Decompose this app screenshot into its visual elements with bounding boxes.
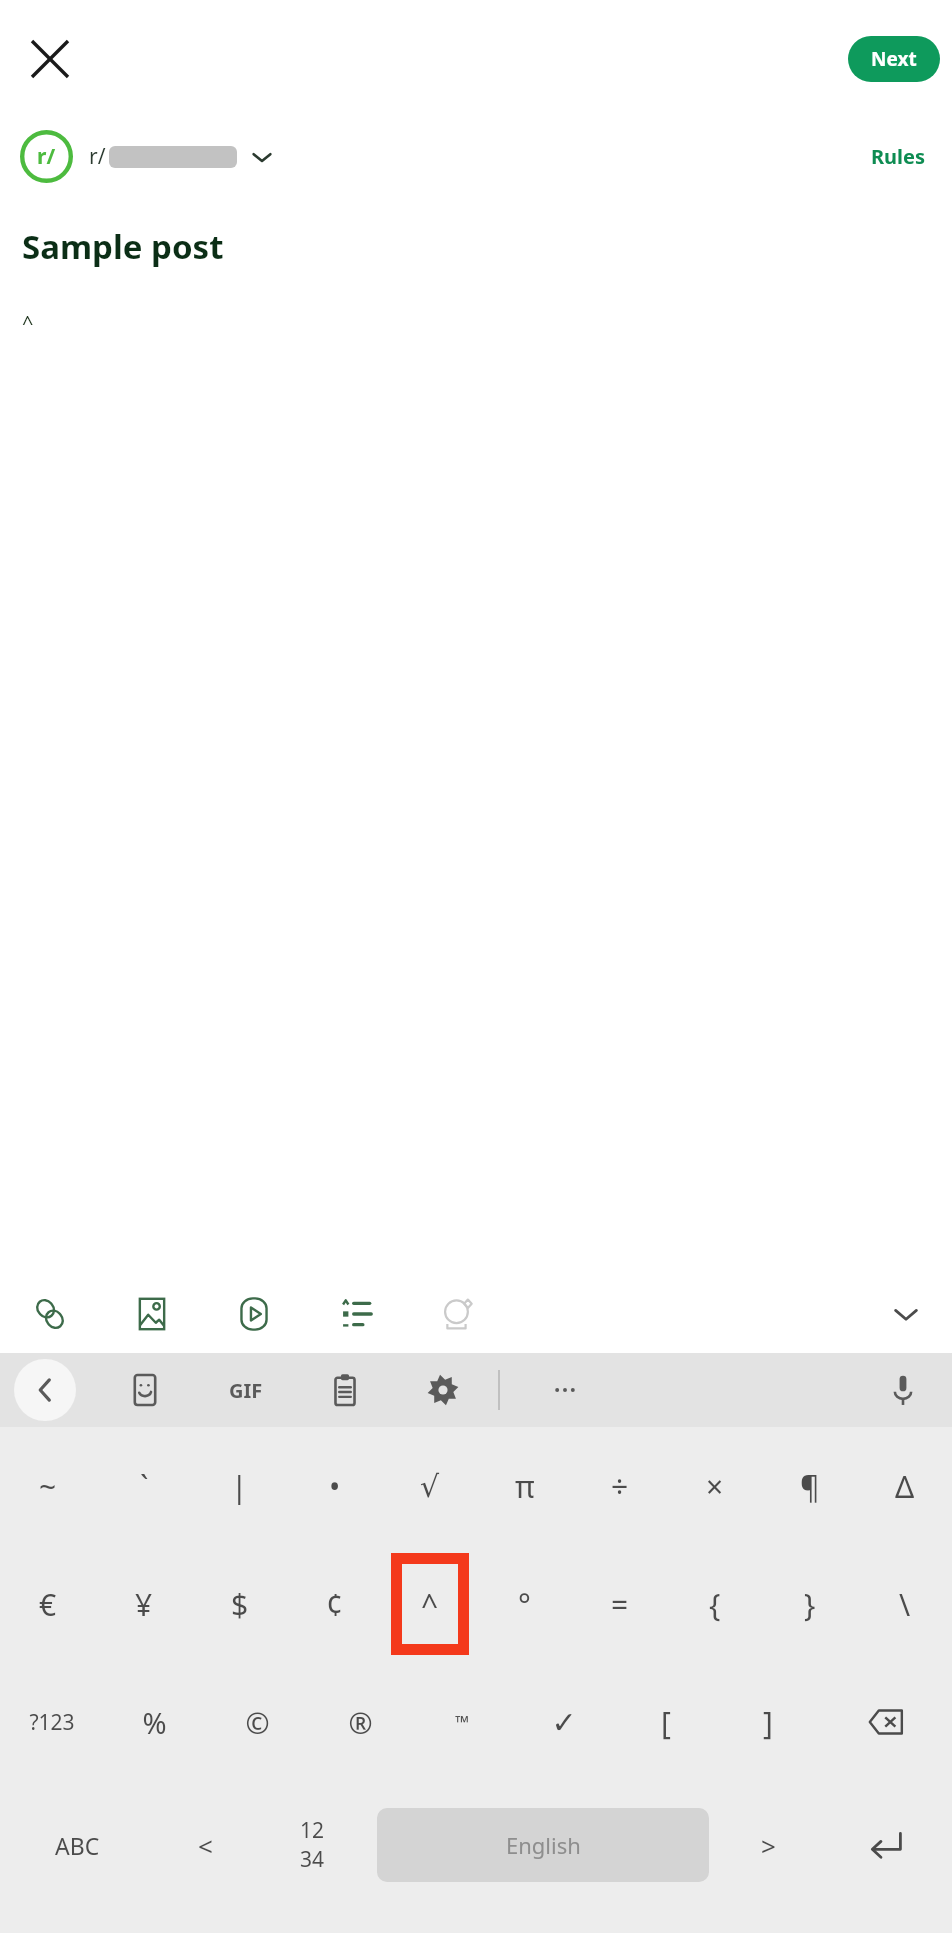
button[interactable]: Voice input xyxy=(876,1363,930,1417)
button[interactable]: ™ xyxy=(411,1663,513,1781)
staticText: ^ xyxy=(421,1584,439,1625)
staticText: $ xyxy=(231,1584,249,1625)
staticText: ® xyxy=(348,1703,373,1742)
button[interactable]: < xyxy=(154,1781,256,1909)
button[interactable]: Insert link xyxy=(24,1288,76,1340)
button[interactable]: > xyxy=(717,1781,819,1909)
button[interactable]: Community avatar xyxy=(20,130,73,183)
button[interactable]: { xyxy=(667,1545,762,1663)
button[interactable]: Clipboard xyxy=(318,1363,372,1417)
button[interactable]: Close xyxy=(12,21,88,97)
button[interactable]: ÷ xyxy=(572,1427,667,1545)
button[interactable]: More options xyxy=(538,1363,592,1417)
button[interactable]: English xyxy=(377,1808,709,1882)
button[interactable]: GIF xyxy=(216,1360,276,1420)
button[interactable]: π xyxy=(477,1427,572,1545)
button[interactable]: ¶ xyxy=(762,1427,857,1545)
button[interactable]: Sample post xyxy=(22,224,952,269)
staticText: Rules xyxy=(871,143,926,170)
button[interactable]: € xyxy=(0,1545,96,1663)
staticText: | xyxy=(231,1466,248,1507)
staticText: π xyxy=(515,1466,535,1507)
staticText: < xyxy=(198,1828,213,1863)
staticText: 12 xyxy=(300,1816,325,1845)
staticText: > xyxy=(761,1828,776,1863)
button[interactable]: Next xyxy=(848,36,940,82)
button[interactable]: ] xyxy=(717,1663,819,1781)
button[interactable]: Insert image xyxy=(126,1288,178,1340)
staticText: ¶ xyxy=(800,1466,820,1507)
staticText: } xyxy=(804,1584,816,1625)
staticText: { xyxy=(709,1584,721,1625)
button[interactable]: Rules xyxy=(865,137,932,176)
staticText: Δ xyxy=(895,1466,915,1507)
staticText: ?123 xyxy=(29,1708,75,1737)
staticText: % xyxy=(142,1703,167,1742)
staticText: ÷ xyxy=(611,1466,629,1507)
button[interactable]: ® xyxy=(309,1663,411,1781)
button[interactable]: Backspace xyxy=(819,1663,952,1781)
staticText: ✓ xyxy=(551,1705,577,1740)
button[interactable]: ¥ xyxy=(96,1545,192,1663)
button[interactable]: r/ xyxy=(89,142,273,171)
button[interactable]: ¢ xyxy=(287,1545,382,1663)
button[interactable]: Collapse toolbar xyxy=(882,1290,930,1338)
staticText: English xyxy=(506,1830,581,1860)
staticText: = xyxy=(611,1584,629,1625)
staticText: ¥ xyxy=(135,1584,153,1625)
staticText: ^ xyxy=(22,309,34,336)
button[interactable]: % xyxy=(103,1663,206,1781)
button[interactable]: Insert poll xyxy=(330,1288,382,1340)
staticText: • xyxy=(329,1466,341,1507)
staticText: © xyxy=(245,1703,270,1742)
button[interactable]: \ xyxy=(857,1545,952,1663)
button[interactable]: Stickers xyxy=(118,1363,172,1417)
button[interactable]: Predictions xyxy=(432,1288,484,1340)
button[interactable]: Insert video xyxy=(228,1288,280,1340)
button[interactable]: Enter xyxy=(819,1781,952,1909)
staticText: √ xyxy=(420,1469,440,1504)
button[interactable]: ABC xyxy=(0,1781,154,1909)
staticText: r/ xyxy=(89,142,106,171)
staticText: \ xyxy=(899,1584,911,1625)
staticText: ABC xyxy=(55,1830,100,1861)
button[interactable]: ^ xyxy=(382,1545,477,1663)
staticText: Next xyxy=(871,46,917,72)
staticText: Sample post xyxy=(22,224,224,269)
button[interactable]: • xyxy=(287,1427,382,1545)
button[interactable]: ✓ xyxy=(513,1663,615,1781)
staticText: € xyxy=(39,1584,57,1625)
staticText: r/ xyxy=(37,142,56,171)
button[interactable]: ` xyxy=(96,1427,192,1545)
button[interactable]: Δ xyxy=(857,1427,952,1545)
staticText: ° xyxy=(518,1584,531,1625)
button[interactable]: [ xyxy=(615,1663,717,1781)
button[interactable]: = xyxy=(572,1545,667,1663)
staticText: 34 xyxy=(300,1845,325,1874)
staticText: ¢ xyxy=(326,1584,344,1625)
button[interactable]: $ xyxy=(192,1545,287,1663)
button[interactable]: Settings xyxy=(416,1363,470,1417)
button[interactable]: × xyxy=(667,1427,762,1545)
staticText: [ xyxy=(661,1702,671,1743)
button[interactable]: ~ xyxy=(0,1427,96,1545)
button[interactable]: ^ xyxy=(22,309,952,336)
button[interactable]: √ xyxy=(382,1427,477,1545)
staticText: ~ xyxy=(39,1466,57,1507)
button[interactable]: } xyxy=(762,1545,857,1663)
button[interactable]: | xyxy=(192,1427,287,1545)
button[interactable]: © xyxy=(206,1663,309,1781)
button[interactable]: ° xyxy=(477,1545,572,1663)
button[interactable]: 12 xyxy=(256,1781,369,1909)
button[interactable]: ?123 xyxy=(0,1663,103,1781)
staticText: ™ xyxy=(455,1710,469,1735)
staticText: ` xyxy=(140,1466,149,1507)
staticText: × xyxy=(706,1466,724,1507)
button[interactable]: Back xyxy=(14,1359,76,1421)
staticText: GIF xyxy=(229,1377,263,1404)
staticText: ] xyxy=(763,1702,773,1743)
